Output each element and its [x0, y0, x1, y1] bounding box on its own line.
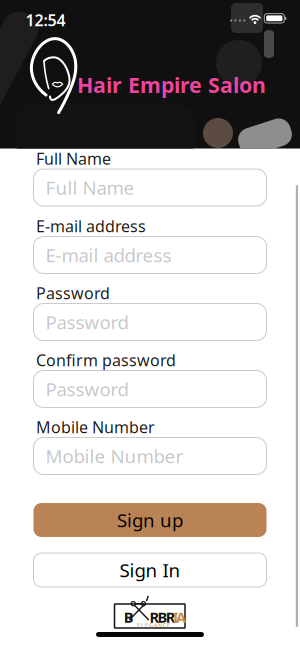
button[interactable]: Full Name: [33, 169, 266, 206]
staticText: Password: [45, 377, 128, 401]
staticText: R: [166, 607, 176, 627]
staticText: Password: [45, 310, 128, 334]
staticText: R: [149, 607, 159, 627]
staticText: 12:54: [25, 9, 65, 31]
staticText: Hair Empire Salon: [77, 70, 266, 99]
staticText: Mobile Number: [45, 444, 183, 468]
staticText: A: [176, 607, 186, 627]
staticText: E L E G A N C E: [137, 622, 170, 629]
button[interactable]: Mobile Number: [33, 437, 266, 474]
button[interactable]: Password: [33, 303, 266, 340]
button[interactable]: Sign In: [33, 553, 266, 587]
staticText: B: [124, 607, 134, 627]
staticText: Sign In: [119, 558, 180, 582]
staticText: Full Name: [36, 148, 111, 169]
staticText: Confirm password: [36, 349, 176, 371]
staticText: Full Name: [45, 175, 134, 200]
staticText: E-mail address: [45, 243, 171, 267]
button[interactable]: Password: [33, 370, 266, 407]
staticText: Mobile Number: [36, 416, 155, 438]
staticText: Sign up: [117, 508, 183, 532]
button[interactable]: Sign up: [33, 503, 266, 537]
staticText: B: [158, 607, 168, 627]
staticText: Password: [36, 282, 110, 304]
button[interactable]: E-mail address: [33, 236, 266, 273]
staticText: I: [173, 607, 179, 627]
staticText: E-mail address: [36, 215, 146, 237]
